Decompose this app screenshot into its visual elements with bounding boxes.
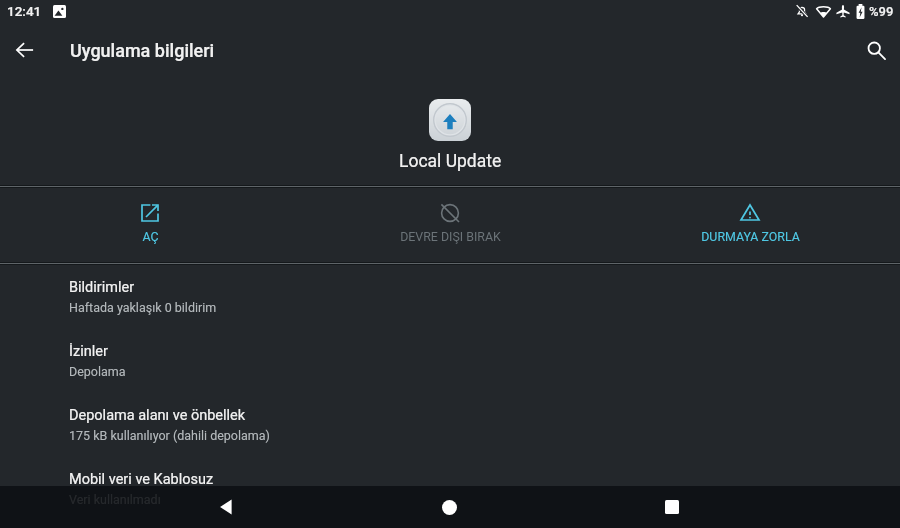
staticText: Bildirimler [69,279,135,296]
staticText: 12:41 [7,3,42,19]
button[interactable]: Back [2,27,48,73]
button[interactable]: DURMAYA ZORLA [600,188,900,262]
staticText: Depolama alanı ve önbellek [69,407,246,424]
button[interactable]: Recent apps [649,486,695,528]
staticText: Veri kullanılmadı [69,492,161,507]
staticText: DURMAYA ZORLA [701,229,800,244]
staticText: Haftada yaklaşık 0 bildirim [69,300,217,315]
staticText: Mobil veri ve Kablosuz [69,471,214,488]
staticText: DEVRE DIŞI BIRAK [400,229,501,244]
staticText: AÇ [142,229,159,244]
staticText: Local Update [399,151,502,172]
button[interactable]: AÇ [0,188,300,262]
button[interactable]: Depolama alanı ve önbellek [0,393,900,457]
button[interactable]: Bildirimler [0,265,900,329]
staticText: 175 kB kullanılıyor (dahili depolama) [69,428,270,443]
button[interactable]: İzinler [0,329,900,393]
staticText: Depolama [69,364,126,379]
staticText: İzinler [69,343,108,360]
button[interactable]: Search [852,26,900,74]
button[interactable]: Mobil veri ve Kablosuz [0,457,900,521]
staticText: %99 [869,4,894,19]
button[interactable]: DEVRE DIŞI BIRAK [300,188,600,262]
button[interactable]: Home [426,486,472,528]
staticText: Uygulama bilgileri [70,40,215,61]
button[interactable]: Back [203,486,249,528]
